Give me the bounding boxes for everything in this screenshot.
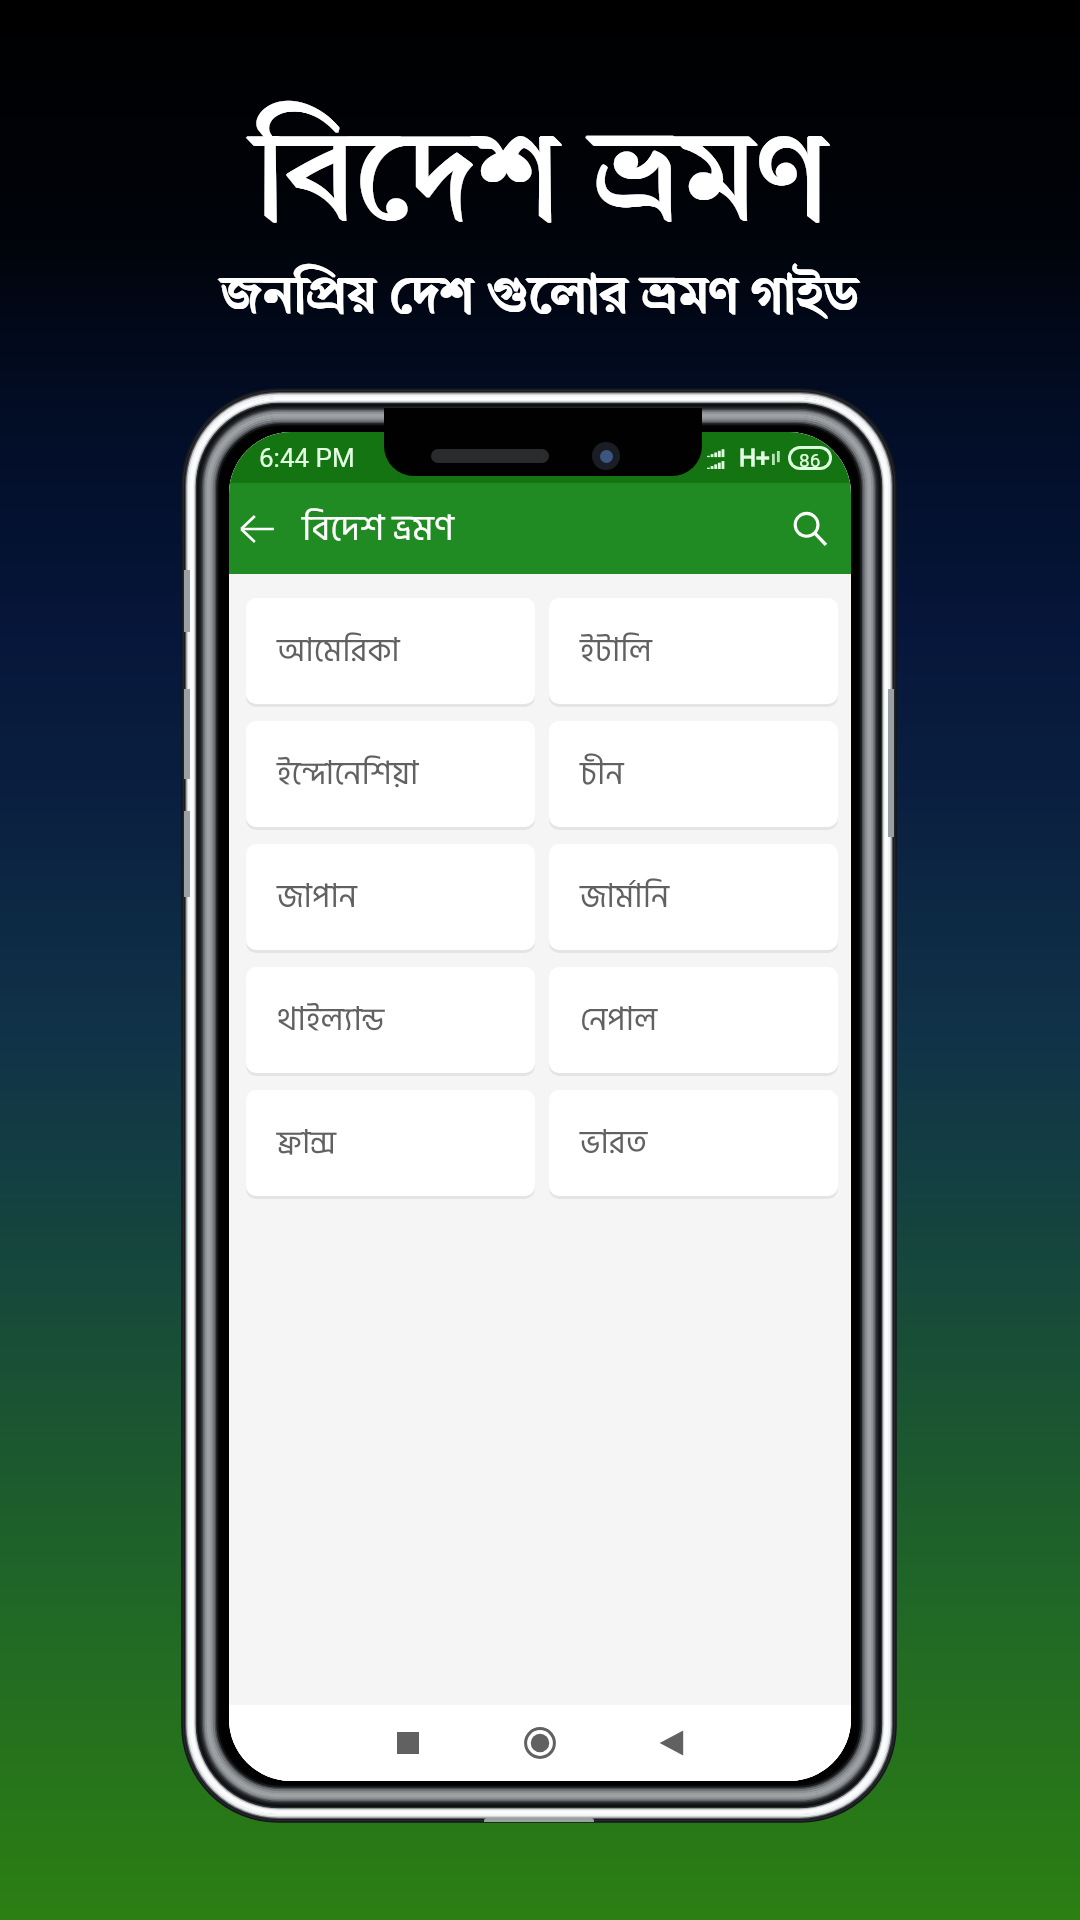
- button[interactable]: Home: [474, 1705, 606, 1781]
- button[interactable]: Back: [606, 1705, 738, 1781]
- staticText: জনপ্রিয় দেশ গুলোর ভ্রমণ গাইড: [221, 272, 859, 325]
- button[interactable]: আমেরিকা: [246, 598, 535, 704]
- button[interactable]: Recent apps: [342, 1705, 474, 1781]
- button[interactable]: জাপান: [246, 844, 535, 950]
- staticText: চীন: [580, 748, 624, 800]
- staticText: নেপাল: [580, 994, 658, 1046]
- button[interactable]: ইন্দোনেশিয়া: [246, 721, 535, 827]
- button[interactable]: জার্মানি: [549, 844, 838, 950]
- staticText: জার্মানি: [580, 871, 670, 923]
- staticText: জাপান: [277, 871, 357, 923]
- button[interactable]: Back: [229, 501, 285, 557]
- staticText: জনপ্রিয় দেশ গুলোর ভ্রমণ গাইড: [221, 271, 859, 324]
- button[interactable]: ভারত: [549, 1090, 838, 1196]
- staticText: H+: [739, 444, 770, 472]
- staticText: ভারত: [580, 1117, 648, 1169]
- staticText: 6:44 PM: [259, 443, 355, 473]
- button[interactable]: নেপাল: [549, 967, 838, 1073]
- staticText: বিদেশ ভ্রমণ: [252, 120, 827, 249]
- staticText: বিদেশ ভ্রমণ: [254, 120, 829, 249]
- staticText: ফ্রান্স: [277, 1117, 337, 1169]
- staticText: আমেরিকা: [277, 625, 400, 677]
- staticText: বিদেশ ভ্রমণ: [302, 500, 454, 558]
- staticText: বিদেশ ভ্রমণ: [253, 119, 828, 248]
- staticText: 86: [799, 449, 821, 467]
- staticText: বিদেশ ভ্রমণ: [253, 120, 828, 249]
- staticText: জনপ্রিয় দেশ গুলোর ভ্রমণ গাইড: [222, 272, 860, 325]
- staticText: জনপ্রিয় দেশ গুলোর ভ্রমণ গাইড: [220, 272, 858, 325]
- button[interactable]: ইটালি: [549, 598, 838, 704]
- button[interactable]: চীন: [549, 721, 838, 827]
- staticText: ইন্দোনেশিয়া: [277, 748, 419, 800]
- button[interactable]: ফ্রান্স: [246, 1090, 535, 1196]
- button[interactable]: Search: [782, 501, 838, 557]
- staticText: ইটালি: [580, 625, 652, 677]
- staticText: থাইল্যান্ড: [277, 994, 385, 1046]
- button[interactable]: থাইল্যান্ড: [246, 967, 535, 1073]
